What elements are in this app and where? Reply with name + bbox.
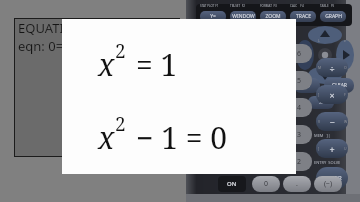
button[interactable]: ×: [316, 85, 348, 104]
staticText: = 1: [136, 44, 178, 85]
button[interactable]: −: [316, 112, 348, 131]
button[interactable]: [186, 0, 360, 202]
staticText: CALC F4: [290, 4, 304, 8]
staticText: 2: [115, 38, 126, 64]
staticText: [: [318, 92, 320, 97]
staticText: 5: [297, 76, 302, 86]
button[interactable]: RS: [294, 78, 320, 93]
staticText: 2: [297, 157, 302, 167]
staticText: M: [318, 65, 322, 70]
staticText: +: [329, 143, 335, 155]
staticText: ]: [318, 146, 320, 151]
staticText: −: [329, 116, 335, 128]
staticText: W: [344, 119, 348, 124]
staticText: .: [296, 179, 298, 189]
staticText: CLEAR: [332, 82, 347, 89]
staticText: (−): [324, 179, 333, 189]
button[interactable]: +: [316, 139, 348, 158]
staticText: ^: [319, 99, 323, 107]
button[interactable]: ENTER: [316, 167, 348, 189]
button[interactable]: 5: [286, 71, 312, 90]
staticText: ×: [329, 89, 335, 101]
staticText: ON: [227, 180, 237, 188]
staticText: O: [344, 65, 347, 70]
staticText: ÷: [329, 62, 335, 74]
staticText: 6: [297, 49, 302, 59]
staticText: GRAPH: [325, 13, 342, 20]
staticText: F: [344, 92, 346, 97]
button[interactable]: WINDOW: [230, 11, 256, 22]
staticText: ZOOM: [265, 13, 281, 20]
button[interactable]: 2: [286, 152, 312, 171]
staticText: V: [318, 119, 321, 124]
button[interactable]: ON: [218, 176, 246, 192]
staticText: ENTER: [323, 174, 342, 182]
staticText: 4: [297, 103, 302, 113]
button[interactable]: CLEAR: [324, 78, 354, 93]
staticText: 3: [297, 130, 302, 140]
button[interactable]: GRAPH: [320, 11, 346, 22]
staticText: TRACE: [296, 13, 311, 20]
staticText: − 1 = 0: [136, 117, 228, 158]
staticText: RS: [304, 82, 310, 89]
staticText: TBLSET F2: [230, 4, 246, 8]
staticText: EQUATION SOLVER: [18, 19, 135, 37]
button[interactable]: 3: [286, 125, 312, 144]
button[interactable]: ^: [308, 96, 334, 109]
staticText: 2: [115, 111, 126, 137]
staticText: MEM ]|: [314, 133, 331, 138]
button[interactable]: (−): [314, 176, 342, 192]
staticText: ENTRY SOLVE: [314, 160, 341, 165]
staticText: TABLE F5: [320, 4, 335, 8]
staticText: x: [98, 117, 115, 158]
button[interactable]: TRACE: [290, 11, 316, 22]
staticText: FORMAT F3: [260, 4, 277, 8]
button[interactable]: x: [62, 19, 296, 174]
button[interactable]: 4: [286, 98, 312, 117]
staticText: 0: [264, 179, 269, 189]
button[interactable]: 6: [286, 44, 312, 63]
staticText: STAT PLOT F1: [200, 4, 219, 8]
button[interactable]: 0: [252, 176, 280, 192]
staticText: L: [318, 38, 320, 43]
staticText: U: [344, 146, 347, 151]
button[interactable]: EQUATION SOLVER: [14, 18, 180, 157]
staticText: WINDOW: [232, 13, 255, 20]
button[interactable]: ZOOM: [260, 11, 286, 22]
button[interactable]: .: [283, 176, 311, 192]
button[interactable]: Directional pad: [296, 26, 354, 84]
staticText: x: [98, 44, 115, 85]
button[interactable]: Y=: [200, 11, 226, 22]
staticText: eqn: 0=: [18, 37, 64, 55]
button[interactable]: ÷: [316, 58, 348, 77]
staticText: Y=: [210, 13, 216, 20]
staticText: e: [344, 38, 346, 43]
